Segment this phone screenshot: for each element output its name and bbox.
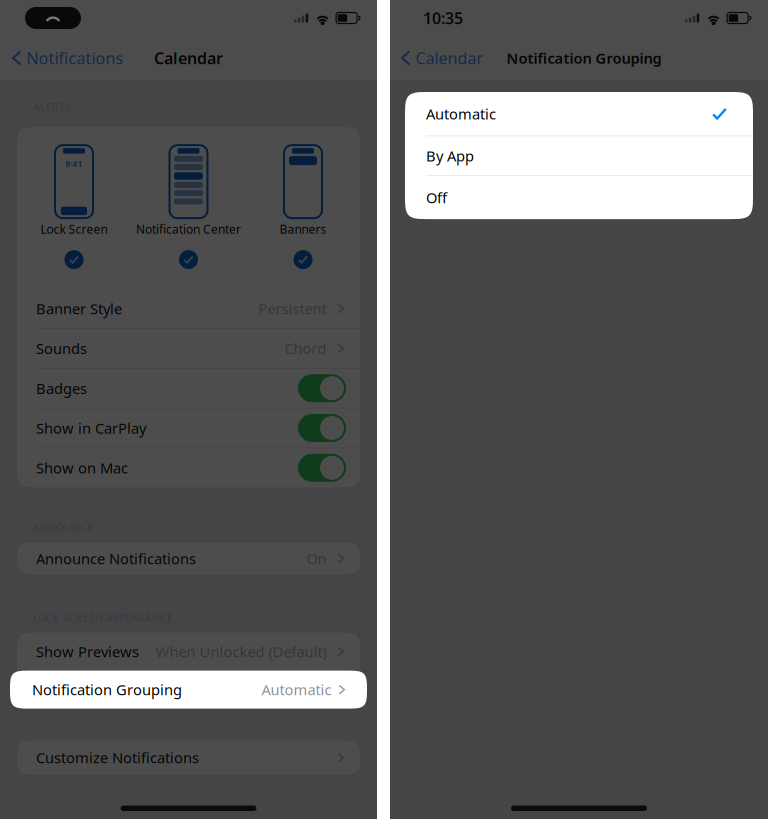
staticText: Sounds <box>36 339 87 358</box>
button[interactable]: Announce Notifications <box>17 542 360 574</box>
button[interactable]: Customize Notifications <box>17 741 360 775</box>
staticText: Banner Style <box>36 299 122 318</box>
staticText: Banners <box>279 221 326 237</box>
staticText: Show on Mac <box>36 458 128 478</box>
staticText: LOCK SCREEN APPEARANCE <box>33 610 173 625</box>
staticText: Lock Screen <box>40 221 107 237</box>
staticText: Off <box>426 188 447 207</box>
staticText: Persistent <box>259 299 327 318</box>
staticText: Calendar <box>415 47 483 69</box>
button[interactable]: Badges <box>17 369 360 408</box>
button[interactable]: Off <box>405 176 753 219</box>
button[interactable]: Notifications <box>0 37 123 79</box>
staticText: When Unlocked (Default) <box>156 642 327 661</box>
button[interactable]: 9:41 <box>24 145 124 269</box>
staticText: Show in CarPlay <box>36 418 146 438</box>
staticText: Automatic <box>426 104 496 123</box>
button[interactable]: Sounds <box>17 329 360 368</box>
button[interactable]: Notification Center <box>131 145 246 269</box>
staticText: Notifications <box>26 47 123 69</box>
staticText: Automatic <box>262 680 332 699</box>
staticText: ALERTS <box>33 100 71 114</box>
staticText: Calendar <box>154 47 223 69</box>
staticText: Notification Grouping <box>506 48 661 68</box>
button[interactable]: Show on Mac <box>17 448 360 487</box>
staticText: Notification Center <box>136 221 241 237</box>
button[interactable]: Banners <box>253 145 353 269</box>
staticText: By App <box>426 146 474 166</box>
staticText: ANNOUNCE <box>33 520 93 534</box>
button[interactable]: Calendar <box>390 37 483 79</box>
button[interactable]: Show Previews <box>17 633 360 671</box>
button[interactable]: Automatic <box>405 92 753 135</box>
staticText: Badges <box>36 378 87 398</box>
button[interactable]: Notification Grouping <box>17 671 360 709</box>
button[interactable]: By App <box>405 136 753 175</box>
button[interactable]: Show in CarPlay <box>17 408 360 447</box>
staticText: Show Previews <box>36 642 139 661</box>
staticText: Announce Notifications <box>36 549 196 568</box>
staticText: On <box>307 549 327 568</box>
button[interactable]: Banner Style <box>17 289 360 328</box>
staticText: 9:41 <box>65 159 82 169</box>
staticText: Notification Grouping <box>32 680 182 699</box>
staticText: 10:35 <box>423 7 463 29</box>
staticText: Customize Notifications <box>36 748 199 767</box>
staticText: Chord <box>285 339 327 358</box>
